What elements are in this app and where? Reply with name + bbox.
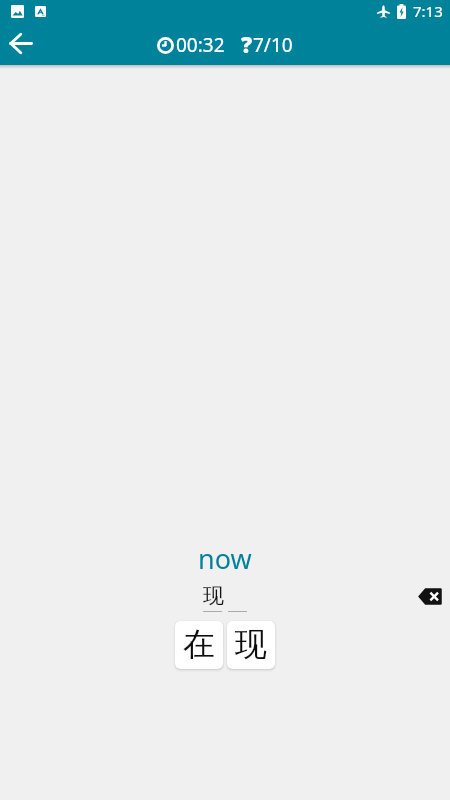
button[interactable]: 在 — [175, 621, 223, 669]
staticText: now — [198, 540, 252, 577]
staticText: ? — [241, 29, 253, 55]
button[interactable]: 现 — [203, 583, 222, 612]
staticText: 00:32 — [176, 32, 225, 58]
staticText: 现 — [235, 624, 267, 664]
staticText: 7/10 — [253, 32, 293, 58]
staticText: 现 — [203, 583, 222, 609]
button[interactable]: Back — [0, 24, 42, 62]
button[interactable]: Backspace — [414, 581, 445, 612]
staticText: 7:13 — [413, 1, 443, 21]
button[interactable]: 现 — [227, 621, 275, 669]
staticText: 在 — [183, 624, 215, 664]
button[interactable]: Empty answer slot — [228, 583, 247, 612]
